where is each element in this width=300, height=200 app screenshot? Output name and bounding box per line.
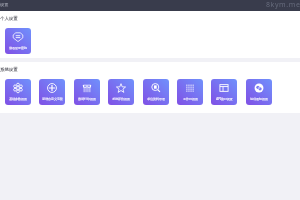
button[interactable]: 工作日设置: [177, 79, 203, 105]
staticText: API接口设置: [216, 97, 233, 101]
staticText: 数据打印设置: [78, 97, 96, 101]
staticText: 8kym.me: [266, 0, 300, 10]
button[interactable]: 系统评价设置: [108, 79, 134, 105]
staticText: 新增自定义字段: [42, 97, 63, 101]
button[interactable]: 单位资料管理: [143, 79, 169, 105]
button[interactable]: 数据打印设置: [74, 79, 100, 105]
staticText: 修改登录密码: [9, 46, 27, 50]
button[interactable]: 新增自定义字段: [39, 79, 65, 105]
staticText: 系统设置: [0, 67, 18, 73]
staticText: 基础参数设置: [9, 97, 27, 101]
staticText: 短信通知设置: [250, 97, 268, 101]
staticText: 设置: [0, 2, 9, 7]
button[interactable]: 修改登录密码: [5, 28, 31, 54]
button[interactable]: 基础参数设置: [5, 79, 31, 105]
staticText: 工作日设置: [183, 97, 198, 101]
button[interactable]: 短信通知设置: [246, 79, 272, 105]
staticText: 单位资料管理: [147, 97, 165, 101]
staticText: 个人设置: [0, 16, 18, 22]
staticText: 系统评价设置: [112, 97, 130, 101]
button[interactable]: API接口设置: [211, 79, 237, 105]
